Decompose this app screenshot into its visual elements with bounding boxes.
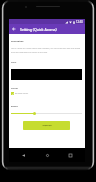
staticText: Radius	[11, 105, 18, 108]
staticText: Description	[11, 40, 24, 43]
button[interactable]: Subscribe	[23, 121, 70, 130]
staticText: This is a place for custom search and co…	[11, 47, 82, 53]
staticText: 12:30	[76, 20, 83, 24]
button[interactable]: Home	[43, 151, 52, 160]
button[interactable]: Back	[9, 24, 19, 34]
staticText: Corner	[11, 87, 18, 90]
button[interactable]: Back	[19, 151, 28, 160]
staticText: Subscribe	[42, 124, 52, 127]
button[interactable]: Rounded corner	[11, 91, 82, 95]
staticText: Setting (Quick Access)	[20, 27, 57, 32]
staticText: Color	[11, 61, 17, 64]
button[interactable]: Radius slider	[11, 110, 82, 116]
button[interactable]: Recent apps	[66, 151, 75, 160]
staticText: Rounded corner	[15, 92, 29, 94]
